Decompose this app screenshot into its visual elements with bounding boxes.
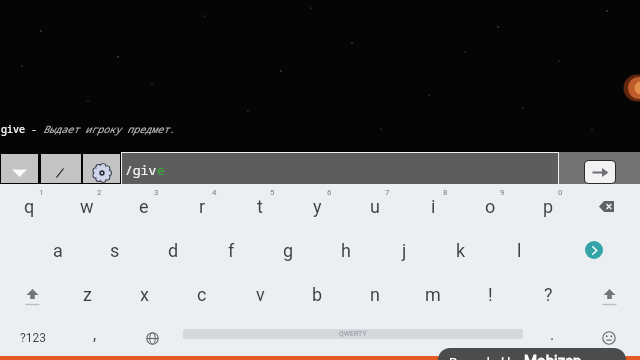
staticText: y xyxy=(313,196,322,217)
staticText: /giv xyxy=(125,161,157,179)
staticText: q xyxy=(24,196,35,217)
button[interactable]: u xyxy=(346,184,404,228)
staticText: . xyxy=(550,325,555,344)
staticText: m xyxy=(425,284,441,305)
button[interactable]: h xyxy=(317,228,375,272)
staticText: Выдает игроку предмет. xyxy=(43,122,175,136)
button[interactable]: y xyxy=(288,184,346,228)
button[interactable]: z xyxy=(58,272,116,316)
staticText: 0 xyxy=(558,188,563,197)
staticText: 7 xyxy=(385,188,390,197)
button[interactable]: f xyxy=(202,228,260,272)
staticText: ?123 xyxy=(20,331,46,345)
button[interactable]: Emoji xyxy=(578,316,640,360)
button[interactable]: Backspace xyxy=(577,184,635,228)
staticText: r xyxy=(199,196,206,217)
staticText: 6 xyxy=(327,188,332,197)
staticText: o xyxy=(485,196,496,217)
staticText: e xyxy=(157,161,165,179)
staticText: 3 xyxy=(154,188,159,197)
button[interactable]: ? xyxy=(519,272,577,316)
button[interactable]: j xyxy=(375,228,433,272)
staticText: - xyxy=(25,122,43,136)
button[interactable]: . xyxy=(526,316,578,360)
button[interactable]: ?123 xyxy=(0,316,66,360)
staticText: s xyxy=(110,240,120,261)
staticText: 8 xyxy=(443,188,448,197)
staticText: QWERTY xyxy=(339,330,367,338)
staticText: p xyxy=(543,196,554,217)
button[interactable]: o xyxy=(461,184,519,228)
staticText: u xyxy=(370,196,380,217)
button[interactable]: ! xyxy=(461,272,519,316)
staticText: t xyxy=(257,196,263,217)
button[interactable]: n xyxy=(346,272,404,316)
staticText: 2 xyxy=(97,188,102,197)
button[interactable]: Shift xyxy=(577,272,635,316)
staticText: 1 xyxy=(39,188,44,197)
staticText: w xyxy=(80,196,94,217)
staticText: a xyxy=(53,240,63,261)
staticText: Mobizen xyxy=(524,352,582,360)
button[interactable]: t xyxy=(231,184,289,228)
staticText: j xyxy=(402,240,407,261)
button[interactable]: Enter xyxy=(548,228,640,272)
staticText: ? xyxy=(544,284,553,305)
staticText: n xyxy=(370,284,380,305)
button[interactable]: Slash xyxy=(41,154,81,183)
staticText: e xyxy=(139,196,149,217)
button[interactable]: a xyxy=(29,228,87,272)
button[interactable]: l xyxy=(490,228,548,272)
button[interactable]: v xyxy=(231,272,289,316)
staticText: k xyxy=(456,240,466,261)
button[interactable]: Hide keyboard xyxy=(1,154,38,183)
staticText: , xyxy=(93,325,97,344)
button[interactable]: q xyxy=(0,184,58,228)
staticText: l xyxy=(517,240,522,261)
button[interactable]: Change language xyxy=(124,316,180,360)
staticText: c xyxy=(197,284,207,305)
staticText: b xyxy=(312,284,323,305)
button[interactable]: , xyxy=(66,316,124,360)
button[interactable]: Space xyxy=(180,316,526,360)
staticText: 5 xyxy=(270,188,275,197)
staticText: x xyxy=(140,284,149,305)
button[interactable]: x xyxy=(115,272,173,316)
button[interactable]: i xyxy=(404,184,462,228)
button[interactable]: w xyxy=(58,184,116,228)
button[interactable]: g xyxy=(259,228,317,272)
staticText: v xyxy=(256,284,265,305)
button[interactable]: r xyxy=(173,184,231,228)
staticText: Recorded by xyxy=(449,355,524,360)
staticText: give xyxy=(1,122,25,136)
staticText: h xyxy=(341,240,351,261)
button[interactable]: m xyxy=(404,272,462,316)
staticText: d xyxy=(168,240,179,261)
button[interactable]: k xyxy=(432,228,490,272)
staticText: 9 xyxy=(500,188,505,197)
button[interactable]: c xyxy=(173,272,231,316)
button[interactable]: /giv xyxy=(122,153,558,184)
button[interactable]: Shift xyxy=(0,272,58,316)
button[interactable]: Settings xyxy=(83,154,120,183)
button[interactable]: d xyxy=(144,228,202,272)
staticText: ! xyxy=(488,284,493,305)
button[interactable]: s xyxy=(86,228,144,272)
staticText: z xyxy=(83,284,92,305)
button[interactable]: b xyxy=(288,272,346,316)
button[interactable]: e xyxy=(115,184,173,228)
staticText: 4 xyxy=(212,188,217,197)
staticText: f xyxy=(228,240,235,261)
button[interactable]: p xyxy=(519,184,577,228)
button[interactable]: Send xyxy=(584,160,616,184)
staticText: i xyxy=(431,196,436,217)
staticText: g xyxy=(283,240,294,261)
